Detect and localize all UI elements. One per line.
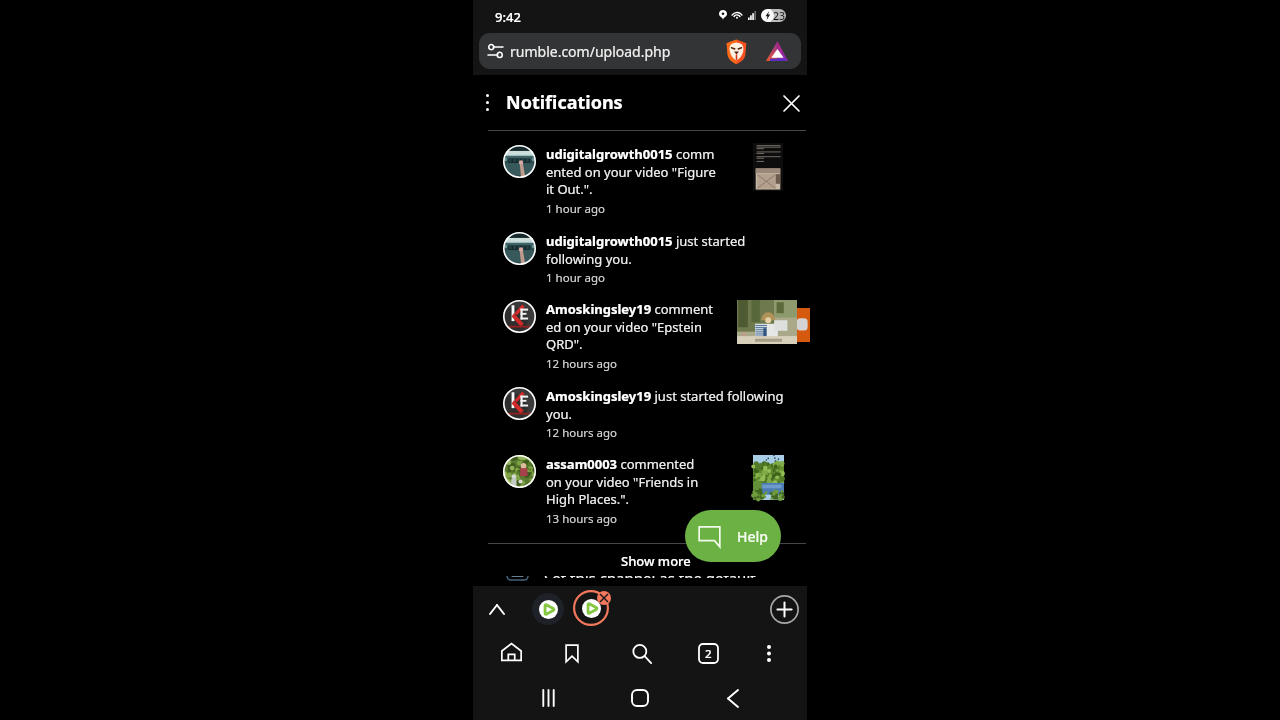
button[interactable]: Tab — [532, 593, 564, 625]
button[interactable]: Bookmarks — [553, 636, 591, 670]
staticText: ed on your video "Epstein — [546, 318, 702, 336]
button[interactable]: New tab — [770, 595, 799, 624]
staticText: on your video "Friends in — [546, 473, 699, 491]
button[interactable]: Home screen — [621, 681, 659, 715]
staticText: udigitalgrowth0015 comm — [546, 145, 715, 163]
staticText: it Out.". — [546, 180, 593, 198]
button[interactable]: udigitalgrowth0015 just started — [503, 232, 793, 290]
button[interactable]: Back — [714, 681, 752, 715]
staticText: Amoskingsley19 just started following — [546, 387, 784, 405]
staticText: Notifications — [506, 90, 623, 115]
staticText: 12 hours ago — [546, 425, 618, 441]
staticText: Help — [737, 527, 768, 546]
staticText: 12 hours ago — [546, 356, 618, 372]
button[interactable]: Show more — [606, 549, 706, 573]
staticText: you. — [546, 405, 573, 423]
staticText: ented on your video "Figure — [546, 163, 716, 181]
staticText: 1 hour ago — [546, 270, 605, 286]
button[interactable]: Menu — [750, 636, 788, 670]
button[interactable]: Brave Shields — [726, 39, 747, 64]
button[interactable]: Expand — [483, 596, 510, 622]
staticText: rumble.com/upload.php — [510, 42, 671, 61]
button[interactable]: More options — [475, 88, 499, 116]
button[interactable]: udigitalgrowth0015 comm — [503, 145, 793, 221]
staticText: Amoskingsley19 comment — [546, 300, 713, 318]
staticText: following you. — [546, 250, 632, 268]
button[interactable]: Home — [492, 635, 530, 669]
button[interactable]: Recent apps — [529, 681, 567, 715]
staticText: udigitalgrowth0015 just started — [546, 232, 746, 250]
button[interactable]: Help — [685, 510, 781, 562]
staticText: 2 — [705, 646, 712, 662]
staticText: assam0003 commented — [546, 455, 695, 473]
staticText: Set this channel as the default — [544, 576, 756, 578]
button[interactable]: Amoskingsley19 just started following — [503, 387, 793, 445]
staticText: 9:42 — [495, 8, 521, 26]
button[interactable]: Tabs — [689, 636, 727, 670]
button[interactable]: Close tab — [597, 591, 611, 605]
button[interactable]: Current tab — [573, 590, 609, 626]
staticText: 23 — [773, 9, 786, 22]
staticText: QRD". — [546, 335, 583, 353]
staticText: 13 hours ago — [546, 511, 618, 527]
staticText: 1 hour ago — [546, 201, 605, 217]
staticText: Show more — [621, 552, 691, 570]
button[interactable]: assam0003 commented — [503, 455, 793, 531]
button[interactable]: Close — [768, 88, 813, 118]
staticText: High Places.". — [546, 490, 629, 508]
button[interactable]: Amoskingsley19 comment — [503, 300, 793, 376]
button[interactable]: Search — [622, 636, 660, 670]
button[interactable]: rumble.com/upload.php — [479, 33, 801, 69]
